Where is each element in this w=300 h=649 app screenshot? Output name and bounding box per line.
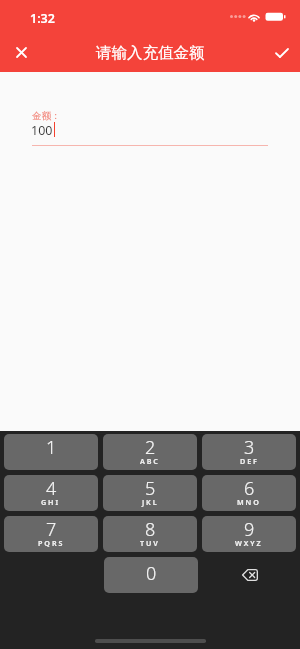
staticText: 0 xyxy=(146,561,157,586)
staticText: 金额： xyxy=(32,110,61,122)
button[interactable]: 9 xyxy=(202,516,296,552)
staticText: 8 xyxy=(145,517,156,542)
button[interactable]: 2 xyxy=(103,434,197,470)
staticText: 1:32 xyxy=(30,10,55,27)
staticText: 9 xyxy=(244,517,255,542)
staticText: 2 xyxy=(145,435,156,460)
button[interactable]: Delete xyxy=(203,557,296,593)
staticText: 6 xyxy=(244,476,255,501)
button[interactable]: 4 xyxy=(4,475,98,511)
button[interactable]: 7 xyxy=(4,516,98,552)
staticText: ABC xyxy=(140,456,160,466)
staticText: JKL xyxy=(142,497,159,507)
button[interactable]: 3 xyxy=(202,434,296,470)
staticText: WXYZ xyxy=(235,538,263,548)
staticText: GHI xyxy=(41,497,61,507)
button[interactable]: 0 xyxy=(104,557,198,593)
button[interactable]: 6 xyxy=(202,475,296,511)
staticText: 5 xyxy=(145,476,156,501)
staticText: 7 xyxy=(46,517,57,542)
staticText: 1 xyxy=(46,435,57,460)
button[interactable]: Close xyxy=(0,31,41,72)
staticText: PQRS xyxy=(38,538,65,548)
button[interactable]: 8 xyxy=(103,516,197,552)
staticText: 请输入充值金额 xyxy=(96,43,205,63)
staticText: DEF xyxy=(240,456,259,466)
staticText: 100 xyxy=(31,122,53,139)
staticText: 4 xyxy=(46,476,57,501)
staticText: TUV xyxy=(140,538,160,548)
button[interactable]: Confirm xyxy=(259,31,300,72)
staticText: 3 xyxy=(244,435,255,460)
staticText: MNO xyxy=(237,497,261,507)
button[interactable]: 5 xyxy=(103,475,197,511)
button[interactable]: 1 xyxy=(4,434,98,470)
